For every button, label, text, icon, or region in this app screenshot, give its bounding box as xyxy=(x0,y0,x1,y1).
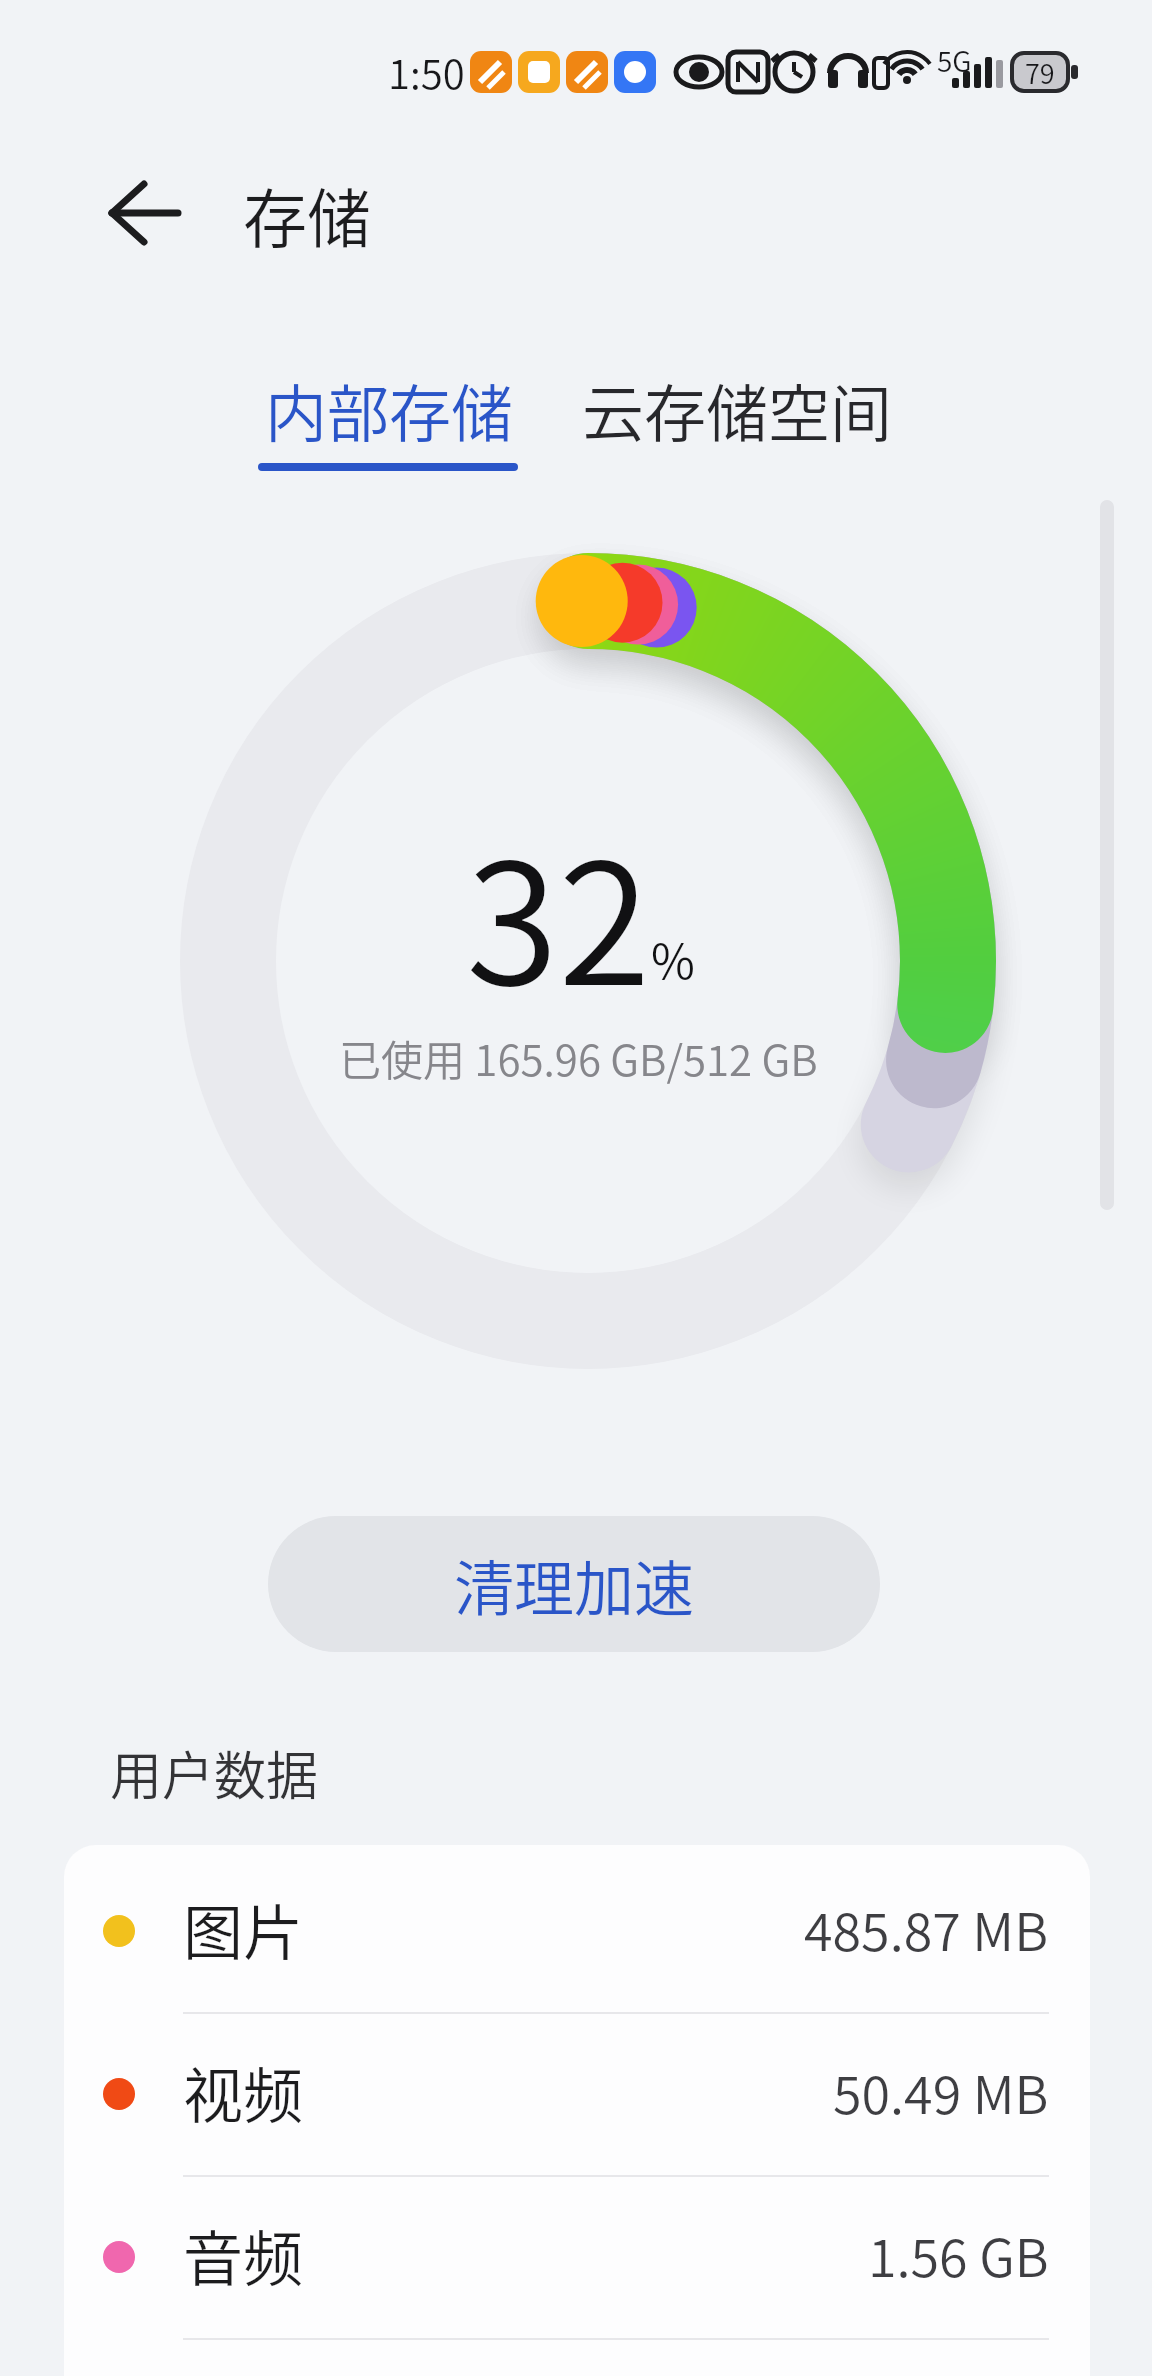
button[interactable]: 视频 xyxy=(64,2008,1090,2175)
staticText: 已使用 165.96 GB/512 GB xyxy=(339,1027,818,1088)
staticText: 50.49 MB xyxy=(833,2054,1049,2129)
button[interactable]: 音频 xyxy=(64,2171,1090,2338)
staticText: 32 xyxy=(466,790,651,1033)
staticText: 音频 xyxy=(183,2211,303,2298)
button[interactable] xyxy=(90,178,200,248)
staticText: % xyxy=(651,923,695,993)
staticText: 云存储空间 xyxy=(582,365,893,455)
staticText: 79 xyxy=(1025,53,1055,92)
staticText: 1.56 GB xyxy=(868,2217,1049,2292)
staticText: 图片 xyxy=(183,1885,303,1972)
button[interactable]: 内部存储 xyxy=(258,348,520,472)
staticText: 485.87 MB xyxy=(804,1891,1049,1966)
staticText: 5G xyxy=(937,40,972,81)
staticText: 内部存储 xyxy=(265,365,514,455)
staticText: 用户数据 xyxy=(110,1735,319,1810)
staticText: 清理加速 xyxy=(454,1541,694,1628)
button[interactable]: 云存储空间 xyxy=(572,348,902,472)
button[interactable]: 图片 xyxy=(64,1845,1090,2012)
staticText: 1:50 xyxy=(388,43,465,101)
staticText: 视频 xyxy=(183,2048,303,2135)
staticText: 存储 xyxy=(243,168,371,261)
button[interactable]: 清理加速 xyxy=(268,1516,880,1652)
